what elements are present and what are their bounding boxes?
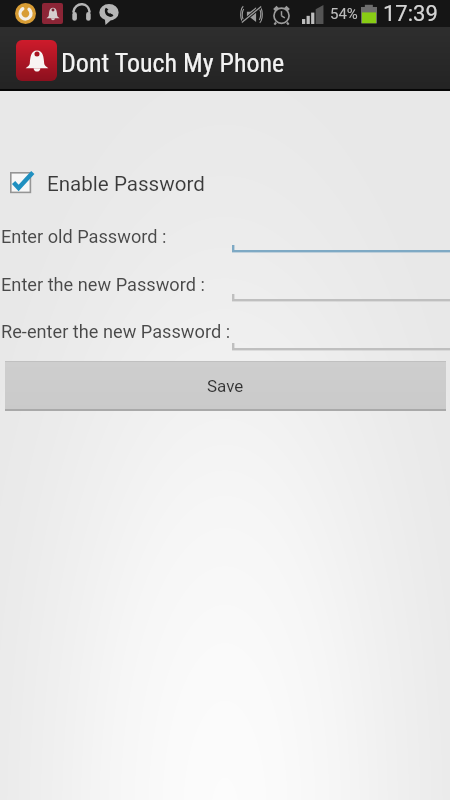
button[interactable]: Save (5, 361, 446, 411)
staticText: Re-enter the new Password : (1, 321, 231, 342)
staticText: 54% (330, 5, 358, 23)
other: Headphones (70, 2, 93, 25)
button[interactable] (232, 230, 450, 254)
button[interactable]: Dont Touch My Phone (16, 39, 285, 80)
staticText: Enter the new Password : (1, 274, 205, 295)
other: Alarm (271, 4, 292, 25)
other: Alert (42, 3, 63, 24)
staticText: Enter old Password : (1, 226, 167, 247)
button[interactable]: Enable Password (10, 171, 205, 197)
staticText: Dont Touch My Phone (61, 48, 285, 78)
button[interactable] (232, 279, 450, 303)
staticText: 17:39 (383, 1, 438, 27)
other: Notification (15, 3, 36, 24)
button[interactable] (232, 328, 450, 352)
other: Messages (98, 3, 120, 25)
other: Sound off (240, 5, 263, 24)
staticText: Enable Password (47, 172, 205, 196)
staticText: Save (207, 376, 244, 396)
